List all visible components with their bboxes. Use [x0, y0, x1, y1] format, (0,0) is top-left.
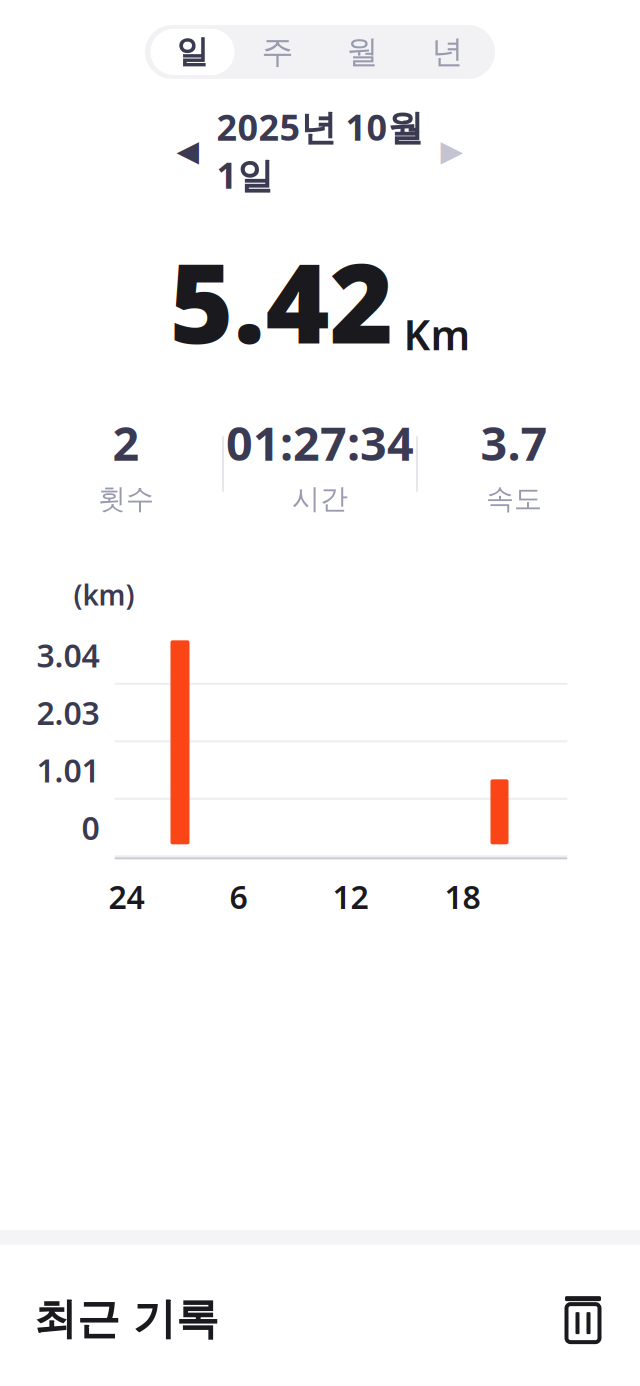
button[interactable]: 일 [150, 29, 235, 75]
staticText: 1.01 [36, 749, 99, 791]
button[interactable]: Next day [425, 127, 479, 175]
staticText: Km [403, 307, 470, 362]
staticText: 5.42 [169, 229, 393, 374]
staticText: 일 [176, 32, 208, 72]
staticText: 시간 [292, 482, 348, 516]
staticText: 횟수 [98, 482, 154, 516]
staticText: 3.7 [480, 412, 547, 474]
staticText: 최근 기록 [34, 1293, 219, 1345]
staticText: 2.03 [36, 691, 99, 734]
staticText: 속도 [486, 482, 542, 516]
staticText: 6 [229, 875, 247, 918]
button[interactable]: 주 [235, 29, 320, 75]
staticText: 2025년 10월 1일 [216, 103, 423, 199]
staticText: 월 [346, 32, 378, 72]
staticText: 3.04 [36, 634, 99, 676]
staticText: ▶ [440, 134, 463, 167]
staticText: 01:27:34 [226, 412, 414, 474]
button[interactable]: Delete records [560, 1294, 606, 1344]
staticText: 0 [81, 806, 99, 849]
staticText: 18 [444, 875, 480, 918]
staticText: 12 [332, 875, 368, 918]
staticText: 2 [112, 412, 139, 474]
button[interactable]: Previous day [161, 127, 215, 175]
staticText: 년 [431, 32, 463, 72]
staticText: (km) [73, 576, 134, 613]
staticText: 24 [108, 875, 144, 918]
staticText: 주 [261, 32, 293, 72]
button[interactable]: 월 [320, 29, 405, 75]
button[interactable]: 년 [405, 29, 490, 75]
staticText: ◀ [176, 134, 199, 167]
